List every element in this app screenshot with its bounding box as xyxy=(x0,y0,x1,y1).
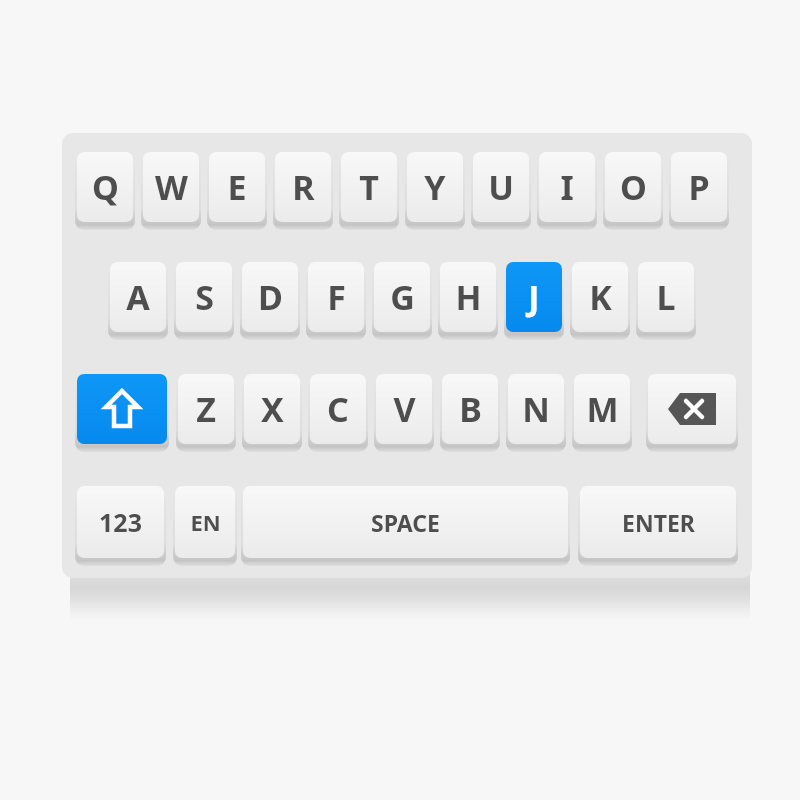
staticText: M xyxy=(586,386,619,432)
button[interactable]: L xyxy=(638,262,694,332)
button[interactable]: K xyxy=(572,262,628,332)
staticText: P xyxy=(688,164,710,210)
button[interactable]: T xyxy=(341,152,397,222)
button[interactable]: A xyxy=(110,262,166,332)
staticText: K xyxy=(589,274,612,320)
button[interactable]: C xyxy=(310,374,366,444)
button[interactable]: O xyxy=(605,152,661,222)
staticText: G xyxy=(390,274,415,320)
staticText: W xyxy=(155,164,188,210)
button[interactable]: P xyxy=(671,152,727,222)
button[interactable]: Q xyxy=(77,152,133,222)
button[interactable]: G xyxy=(374,262,430,332)
staticText: X xyxy=(261,386,284,432)
button[interactable]: ENTER xyxy=(580,486,736,558)
staticText: C xyxy=(327,386,349,432)
staticText: O xyxy=(620,164,647,210)
staticText: ENTER xyxy=(622,507,695,538)
button[interactable]: 123 xyxy=(77,486,164,558)
staticText: S xyxy=(195,274,214,320)
button[interactable]: M xyxy=(574,374,630,444)
button[interactable]: R xyxy=(275,152,331,222)
button[interactable]: E xyxy=(209,152,265,222)
staticText: A xyxy=(126,274,150,320)
staticText: T xyxy=(359,164,379,210)
staticText: Y xyxy=(424,164,446,210)
button[interactable]: V xyxy=(376,374,432,444)
button[interactable]: J xyxy=(506,262,562,332)
button[interactable]: EN xyxy=(175,486,235,558)
button[interactable]: SPACE xyxy=(243,486,568,558)
button[interactable]: S xyxy=(176,262,232,332)
staticText: E xyxy=(227,164,247,210)
staticText: L xyxy=(656,274,676,320)
staticText: B xyxy=(459,386,482,432)
staticText: N xyxy=(522,386,550,432)
button[interactable]: Z xyxy=(178,374,234,444)
button[interactable]: W xyxy=(143,152,199,222)
button[interactable]: B xyxy=(442,374,498,444)
staticText: F xyxy=(327,274,346,320)
button[interactable]: F xyxy=(308,262,364,332)
button[interactable]: I xyxy=(539,152,595,222)
staticText: SPACE xyxy=(371,507,440,538)
button[interactable]: X xyxy=(244,374,300,444)
button[interactable]: D xyxy=(242,262,298,332)
staticText: U xyxy=(488,164,514,210)
button[interactable]: N xyxy=(508,374,564,444)
button[interactable]: U xyxy=(473,152,529,222)
staticText: EN xyxy=(190,507,221,537)
staticText: I xyxy=(560,164,574,210)
staticText: R xyxy=(292,164,315,210)
staticText: H xyxy=(455,274,482,320)
button[interactable]: Shift xyxy=(77,374,167,444)
button[interactable]: Backspace xyxy=(648,374,736,444)
staticText: V xyxy=(393,386,416,432)
staticText: J xyxy=(528,274,540,320)
staticText: Q xyxy=(92,164,119,210)
button[interactable]: H xyxy=(440,262,496,332)
staticText: Z xyxy=(196,386,216,432)
staticText: D xyxy=(258,274,283,320)
button[interactable]: Y xyxy=(407,152,463,222)
staticText: 123 xyxy=(99,505,142,539)
